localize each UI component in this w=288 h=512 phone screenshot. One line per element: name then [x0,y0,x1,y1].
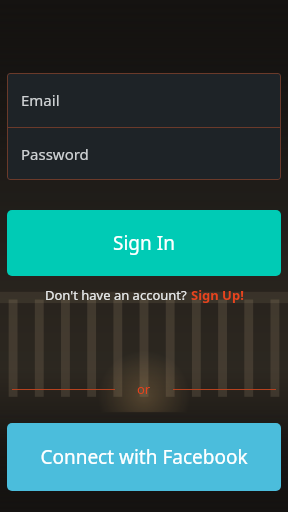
button[interactable]: Connect with Facebook [7,423,281,491]
staticText: Password [21,144,89,164]
staticText: or [137,380,151,398]
staticText: Email [21,90,60,110]
button[interactable]: Password [7,128,281,180]
staticText: Don't have an account? [45,286,191,304]
staticText: Connect with Facebook [40,444,248,470]
staticText: Sign In [113,230,175,256]
staticText: Sign Up! [191,286,244,304]
button[interactable]: Sign Up! [191,286,244,304]
button[interactable]: Email [7,73,281,127]
button[interactable]: Sign In [7,210,281,276]
